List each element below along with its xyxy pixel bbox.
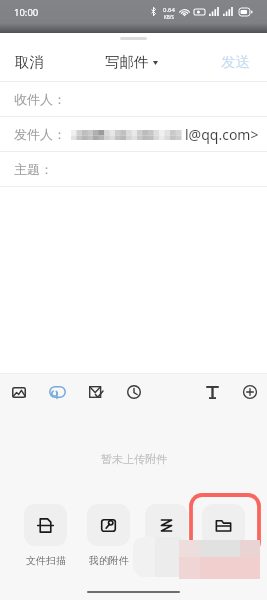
staticText: 主题： [14, 161, 53, 177]
staticText: 暂未上传附件 [101, 452, 167, 466]
button[interactable]: Attach file [44, 379, 70, 405]
staticText: 10:00 [14, 6, 39, 19]
button[interactable]: Folder [202, 504, 245, 554]
staticText: 取消 [15, 53, 44, 71]
staticText: 我的附件 [89, 554, 129, 567]
staticText: 写邮件 [105, 53, 149, 71]
button[interactable]: My attachments [87, 504, 130, 567]
staticText: 发件人： [14, 126, 66, 142]
button[interactable]: Transfer [145, 504, 188, 554]
button[interactable]: Text format [199, 379, 225, 405]
button[interactable]: More options [237, 379, 263, 405]
button[interactable]: Insert image [6, 379, 32, 405]
staticText: 发送 [221, 53, 250, 71]
staticText: 收件人： [14, 91, 66, 107]
button[interactable]: 发送 [204, 46, 267, 78]
staticText: 0.64 [163, 6, 175, 14]
button[interactable]: 收件人： [0, 82, 267, 116]
button[interactable]: 发件人： [0, 117, 267, 151]
button[interactable]: Read receipt [83, 379, 109, 405]
button[interactable]: 主题： [0, 152, 267, 186]
staticText: KB/S [164, 14, 174, 20]
button[interactable]: Schedule send [121, 379, 147, 405]
staticText: 文件扫描 [26, 554, 66, 567]
staticText: l@qq.com> [185, 125, 259, 144]
button[interactable]: 取消 [0, 46, 59, 78]
button[interactable]: 写邮件 [99, 46, 164, 78]
button[interactable]: File scan [24, 504, 67, 567]
